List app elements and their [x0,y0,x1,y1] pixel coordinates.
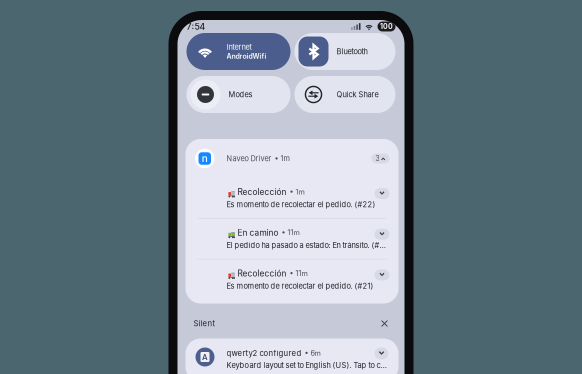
staticText: A [202,352,208,362]
staticText: Quick Share [336,90,378,99]
button[interactable]: Clear silent notifications [377,316,391,330]
staticText: Es momento de recolectar el pedido. (#21… [226,281,373,290]
button[interactable]: Recolección [185,178,398,218]
staticText: n [202,152,208,165]
staticText: 3 [375,154,379,163]
button[interactable]: Quick Share [294,76,395,113]
staticText: Keyboard layout set to English (US). Tap… [226,361,386,370]
button[interactable]: En camino [185,219,398,259]
staticText: AndroidWifi [226,52,266,60]
staticText: 100 [380,22,393,31]
staticText: Recolección [237,187,286,197]
staticText: Silent [193,319,215,328]
button[interactable]: Recolección [185,259,398,299]
button[interactable]: qwerty2 configured [185,338,398,374]
staticText: Internet [226,42,251,51]
staticText: • 1m [289,188,304,196]
button[interactable]: Modes [186,76,290,113]
staticText: Es momento de recolectar el pedido. (#22… [226,200,375,209]
staticText: El pedido ha pasado a estado: En tránsit… [226,241,385,250]
staticText: • 11m [289,269,307,278]
staticText: Naveo Driver [226,154,271,163]
staticText: • 11m [281,228,299,237]
staticText: Recolección [237,268,286,278]
staticText: qwerty2 configured [226,348,301,358]
staticText: En camino [237,228,278,238]
button[interactable]: n [185,139,398,178]
staticText: • 6m [304,349,320,357]
button[interactable]: Bluetooth [294,33,395,70]
staticText: • 1m [274,154,289,163]
staticText: Modes [228,90,252,99]
staticText: Bluetooth [336,47,367,56]
button[interactable]: Internet [186,33,290,70]
staticText: 7:54 [186,21,205,32]
